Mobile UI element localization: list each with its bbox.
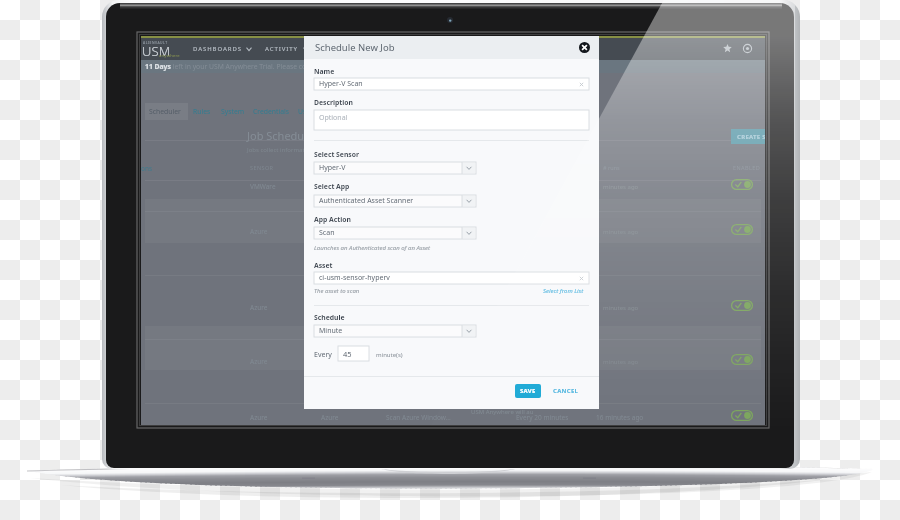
staticText: Name	[314, 67, 335, 76]
button[interactable]: Hyper-V Scan	[314, 78, 589, 90]
staticText: Scheduler	[149, 107, 181, 116]
staticText: CANCEL	[553, 387, 579, 395]
button[interactable]: Enabled toggle	[731, 300, 753, 311]
staticText: SENSOR	[250, 164, 274, 171]
button[interactable]: Minute	[314, 325, 476, 337]
staticText: Scan Azure Window...	[386, 413, 451, 422]
staticText: 11 Days	[145, 62, 171, 71]
staticText: Hyper-V Scan	[319, 79, 363, 89]
staticText: Azure	[250, 357, 268, 366]
button[interactable]: Enabled toggle	[731, 410, 753, 421]
staticText: App Action	[314, 215, 351, 224]
staticText: Select App	[314, 182, 350, 191]
staticText: Minute	[319, 326, 343, 336]
button[interactable]: Credentials	[248, 103, 295, 120]
button[interactable]: Scan	[314, 227, 476, 239]
staticText: Select Sensor	[314, 150, 360, 159]
staticText: 16 minutes ago	[596, 413, 644, 422]
staticText: minutes ago	[603, 358, 639, 366]
staticText: Rules	[193, 107, 211, 116]
staticText: Us	[298, 107, 307, 116]
staticText: minutes ago	[603, 183, 639, 191]
staticText: ACTIVITY	[265, 45, 299, 53]
staticText: # runs	[603, 164, 620, 171]
button[interactable]: Us	[293, 103, 312, 120]
button[interactable]: CANCEL	[553, 387, 579, 395]
staticText: ALIENVAULT	[143, 40, 168, 45]
staticText: 45	[343, 349, 352, 359]
staticText: SAVE	[520, 387, 536, 395]
staticText: ons	[141, 164, 153, 173]
staticText: minutes ago	[603, 228, 639, 236]
staticText: Every 20 minutes	[516, 413, 569, 422]
staticText: Azure	[321, 413, 339, 422]
staticText: VMWare	[250, 182, 276, 191]
staticText: minutes ago	[603, 304, 639, 312]
button[interactable]: Rules	[188, 103, 216, 120]
button[interactable]: Hyper-V	[314, 162, 476, 174]
staticText: minute(s)	[376, 351, 403, 359]
staticText: Schedule New Job	[315, 41, 395, 54]
button[interactable]: Help	[741, 42, 753, 54]
staticText: Credentials	[253, 107, 290, 116]
staticText: DASHBOARDS	[193, 45, 242, 53]
staticText: Description	[314, 98, 353, 107]
staticText: Asset	[314, 261, 333, 270]
staticText: left in your USM Anywhere Trial. Please …	[171, 62, 341, 71]
button[interactable]: System	[216, 103, 250, 120]
button[interactable]: ACTIVITY	[265, 45, 309, 53]
button[interactable]: DASHBOARDS	[193, 45, 252, 53]
staticText: Authenticated Asset Scanner	[319, 196, 414, 206]
staticText: USM	[142, 42, 171, 60]
staticText: Jobs collect informati	[247, 146, 307, 154]
staticText: ci-usm-sensor-hyperv	[319, 273, 390, 283]
button[interactable]: 45	[338, 346, 369, 361]
staticText: CREATE S	[737, 133, 765, 141]
button[interactable]: Authenticated Asset Scanner	[314, 195, 476, 207]
button[interactable]: Optional	[314, 110, 589, 130]
staticText: Azure	[250, 413, 268, 422]
button[interactable]: Enabled toggle	[731, 179, 753, 190]
staticText: System	[221, 107, 245, 116]
staticText: Optional	[319, 113, 348, 123]
staticText: Select from List	[543, 287, 584, 295]
button[interactable]: CREATE S	[731, 129, 765, 144]
staticText: Azure	[250, 303, 268, 312]
button[interactable]: Enabled toggle	[731, 354, 753, 365]
staticText: Azure	[250, 227, 268, 236]
button[interactable]: ci-usm-sensor-hyperv	[314, 272, 589, 284]
staticText: Every	[314, 350, 332, 360]
staticText: USM Anywhere will au	[471, 408, 534, 416]
staticText: The asset to scan	[314, 287, 360, 295]
staticText: Hyper-V	[319, 163, 346, 173]
button[interactable]: SAVE	[515, 384, 541, 398]
staticText: ENABLED	[733, 164, 761, 171]
staticText: Job Scheduler	[247, 128, 318, 143]
staticText: Schedule	[314, 313, 345, 322]
button[interactable]: Select from List	[543, 287, 584, 295]
button[interactable]: Favorites	[721, 42, 733, 54]
button[interactable]: Enabled toggle	[731, 224, 753, 235]
staticText: anywhere	[159, 53, 180, 59]
button[interactable]: Scheduler	[144, 103, 186, 120]
staticText: Scan	[319, 228, 335, 238]
staticText: Launches an Authenticated scan of an Ass…	[314, 244, 431, 252]
button[interactable]: Close dialog	[579, 42, 590, 53]
